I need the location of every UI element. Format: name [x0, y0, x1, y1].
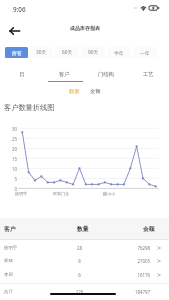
staticText: 徐明宇	[15, 191, 27, 196]
staticText: 90天	[88, 49, 99, 56]
staticText: 120	[69, 289, 90, 295]
staticText: 郑姚	[4, 258, 13, 264]
staticText: 客户	[4, 225, 16, 232]
button[interactable]: 90天	[81, 47, 105, 58]
staticText: 184797	[120, 289, 150, 295]
staticText: 客户数量折线图	[4, 103, 55, 112]
button[interactable]: 半年	[107, 47, 131, 58]
staticText: 李四	[4, 272, 13, 278]
staticText: 数量	[77, 225, 89, 232]
staticText: 所有	[12, 50, 22, 56]
staticText: 76298	[120, 245, 150, 251]
staticText: 一年	[140, 50, 150, 56]
staticText: 徐明宇	[4, 245, 18, 251]
staticText: 金额	[90, 88, 101, 95]
button[interactable]: 李四	[0, 268, 169, 282]
staticText: 16176	[120, 272, 150, 278]
button[interactable]: 日	[0, 64, 43, 82]
button[interactable]: 30天	[30, 47, 53, 58]
staticText: 门结构	[98, 71, 114, 78]
button[interactable]: 60天	[55, 47, 79, 58]
staticText: 28	[69, 245, 90, 251]
staticText: 15	[3, 156, 17, 162]
button[interactable]: 客户	[43, 64, 85, 82]
staticText: 25	[3, 136, 17, 142]
staticText: 0	[3, 186, 17, 192]
button[interactable]: 郑姚	[0, 254, 169, 268]
staticText: 5	[3, 176, 17, 182]
staticText: 成品库存报表	[70, 25, 100, 31]
staticText: 30天	[36, 49, 47, 56]
button[interactable]: 门结构	[85, 64, 127, 82]
staticText: 工艺	[143, 71, 154, 78]
button[interactable]: 金额	[87, 86, 104, 97]
staticText: 数量	[69, 88, 80, 95]
staticText: 8	[69, 258, 90, 264]
staticText: 6	[69, 272, 90, 278]
button[interactable]: 数量	[66, 86, 83, 97]
staticText: 30	[3, 126, 17, 132]
staticText: 日	[19, 71, 25, 78]
staticText: 9:06	[13, 5, 26, 14]
staticText: 20	[3, 146, 17, 152]
staticText: 10	[3, 166, 17, 172]
button[interactable]: 工艺	[127, 64, 169, 82]
staticText: 穆小小	[103, 191, 115, 196]
staticText: 27005	[120, 258, 150, 264]
button[interactable]: 一年	[133, 47, 157, 58]
button[interactable]: 所有	[5, 47, 28, 58]
staticText: 金额	[143, 225, 155, 232]
staticText: 半年	[114, 50, 124, 56]
button[interactable]: Back	[5, 22, 24, 39]
button[interactable]: 徐明宇	[0, 241, 169, 255]
staticText: 60天	[62, 49, 73, 56]
staticText: 合计	[4, 289, 13, 295]
staticText: 客户	[59, 71, 70, 78]
staticText: 群喜门企	[53, 191, 69, 196]
